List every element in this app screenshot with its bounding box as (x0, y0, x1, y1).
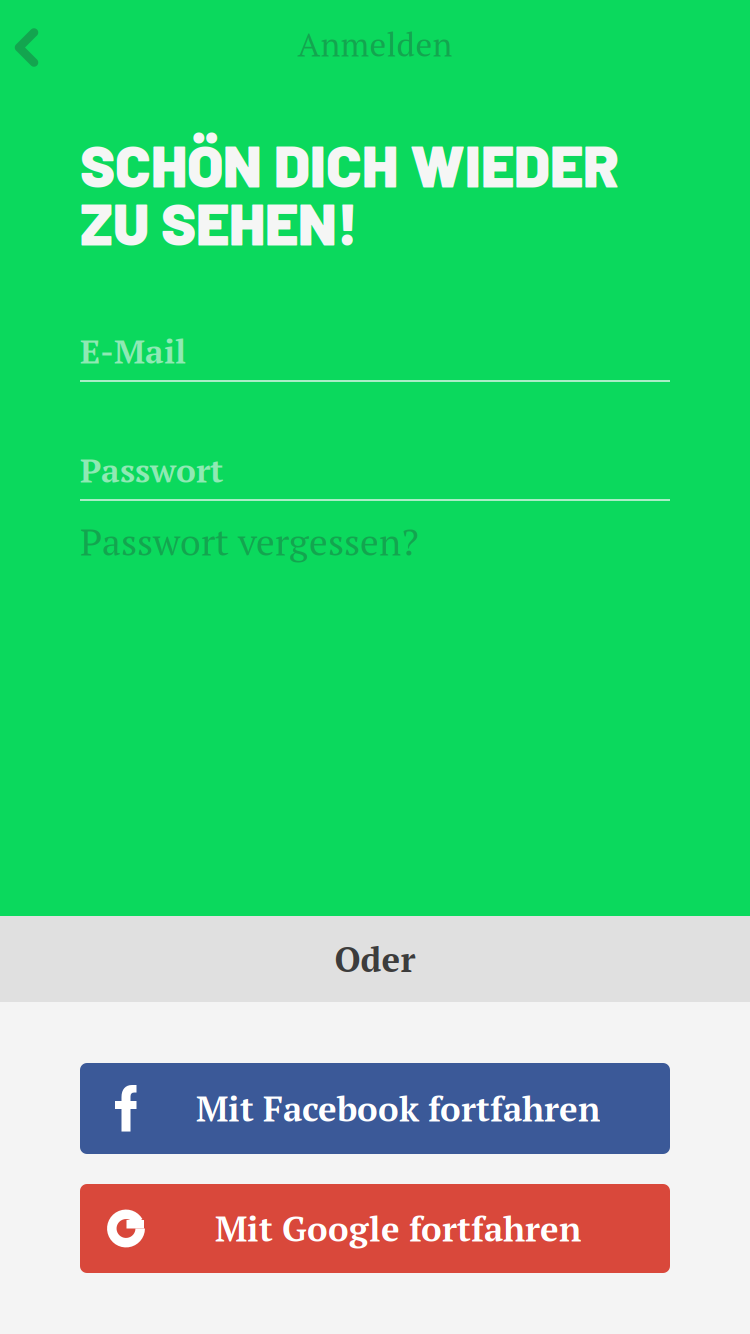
button[interactable]: Back (0, 4, 50, 88)
button[interactable]: Mit Google fortfahren (80, 1184, 670, 1273)
staticText: Passwort vergessen? (80, 517, 419, 566)
staticText: Oder (334, 936, 415, 982)
button[interactable]: Mit Facebook fortfahren (80, 1063, 670, 1154)
staticText: Anmelden (297, 22, 452, 66)
staticText: Mit Facebook fortfahren (196, 1085, 600, 1131)
staticText: ZU SEHEN! (80, 187, 358, 257)
button[interactable]: Passwort vergessen? (59, 496, 472, 587)
staticText: SCHÖN DICH WIEDER (80, 129, 619, 199)
staticText: E-Mail (80, 329, 186, 373)
staticText: Passwort (80, 448, 223, 492)
staticText: Mit Google fortfahren (215, 1205, 581, 1251)
